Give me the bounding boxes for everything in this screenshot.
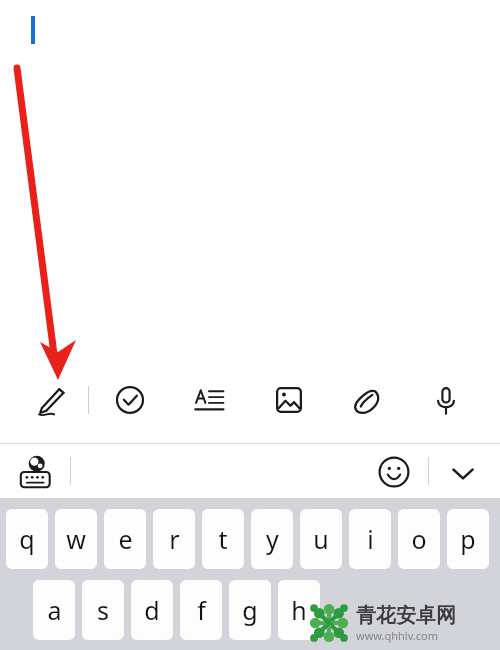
staticText: 青花安卓网 (356, 603, 456, 628)
staticText: i (367, 522, 374, 556)
button[interactable]: u (300, 509, 342, 569)
staticText: p (460, 522, 476, 556)
button[interactable]: h (278, 580, 320, 640)
staticText: d (144, 593, 160, 627)
button[interactable]: t (202, 509, 244, 569)
button[interactable]: q (6, 509, 48, 569)
button[interactable]: Voice input (424, 378, 468, 422)
button[interactable]: o (398, 509, 440, 569)
staticText: o (411, 522, 427, 556)
button[interactable]: i (349, 509, 391, 569)
button[interactable]: Format text (187, 378, 231, 422)
staticText: g (242, 593, 258, 627)
button[interactable]: Tasks (108, 378, 152, 422)
button[interactable]: Draw (30, 378, 74, 422)
staticText: y (266, 522, 279, 556)
button[interactable]: f (180, 580, 222, 640)
button[interactable]: a (33, 580, 75, 640)
button[interactable]: e (104, 509, 146, 569)
button[interactable]: Insert image (267, 378, 311, 422)
staticText: e (118, 522, 133, 556)
staticText: a (47, 593, 62, 627)
button[interactable]: Hide keyboard (446, 456, 480, 490)
button[interactable]: y (251, 509, 293, 569)
staticText: www.qhhlv.com (356, 628, 438, 643)
staticText: r (169, 522, 180, 556)
button[interactable]: g (229, 580, 271, 640)
button[interactable]: r (153, 509, 195, 569)
staticText: s (97, 593, 109, 627)
button[interactable]: d (131, 580, 173, 640)
button[interactable]: Emoji (376, 454, 412, 490)
staticText: w (66, 522, 86, 556)
staticText: t (218, 522, 228, 556)
staticText: q (19, 522, 35, 556)
staticText: f (197, 593, 206, 627)
staticText: u (313, 522, 329, 556)
button[interactable]: Change keyboard language (17, 453, 55, 491)
button[interactable]: p (447, 509, 489, 569)
button[interactable]: Attach file (346, 378, 390, 422)
button[interactable]: w (55, 509, 97, 569)
button[interactable]: s (82, 580, 124, 640)
staticText: h (291, 593, 307, 627)
